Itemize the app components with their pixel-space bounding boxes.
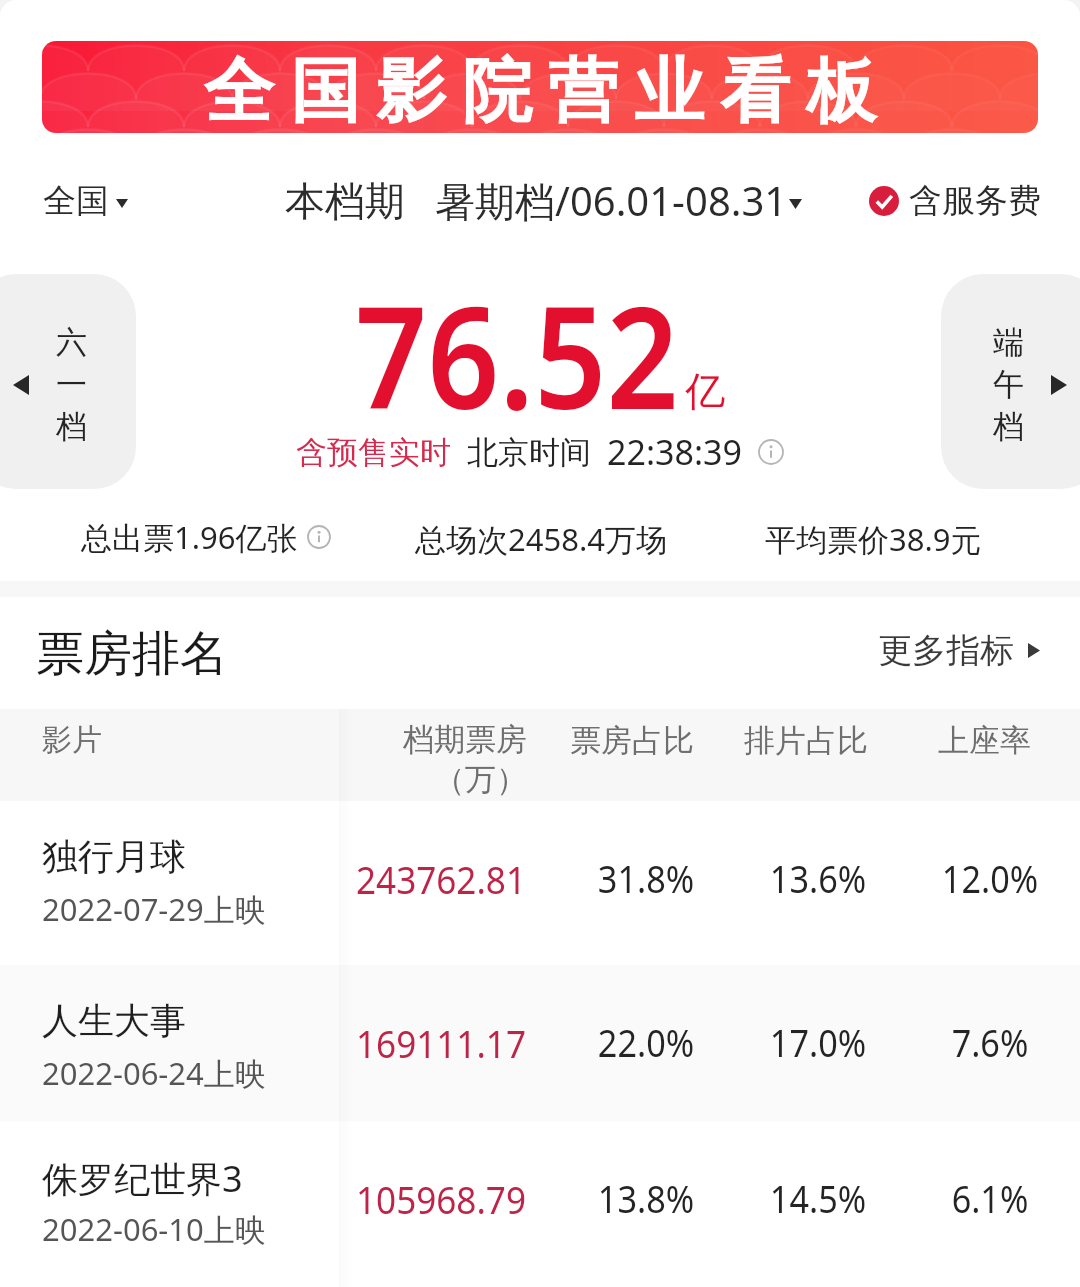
staticText: 北京时间 xyxy=(467,433,591,472)
staticText: 暑期档/06.01-08.31 xyxy=(435,173,788,228)
staticText: 端 xyxy=(993,323,1024,362)
button[interactable]: 下一个档期 xyxy=(1051,375,1067,395)
staticText: 总出票1.96亿张 xyxy=(81,516,298,558)
staticText: 2022-07-29上映 xyxy=(42,888,266,930)
staticText: 14.5% xyxy=(683,1172,953,1224)
button[interactable]: 全国影院营业看板 xyxy=(42,41,1038,133)
button[interactable]: 出票说明 xyxy=(307,525,331,549)
staticText: 6.1% xyxy=(855,1172,1080,1224)
staticText: 22:38:39 xyxy=(607,429,742,475)
button[interactable]: 端 xyxy=(941,274,1080,489)
button[interactable]: 人生大事 xyxy=(0,965,1080,1121)
staticText: 22.0% xyxy=(511,1016,781,1068)
staticText: 含预售实时 xyxy=(296,433,451,472)
staticText: 7.6% xyxy=(855,1016,1080,1068)
button[interactable]: 更多指标 xyxy=(878,629,1040,672)
staticText: 本档期 xyxy=(285,176,405,226)
staticText: 排片占比 xyxy=(744,721,868,760)
button[interactable]: 数据说明 xyxy=(758,439,784,465)
staticText: 影片 xyxy=(42,721,102,759)
staticText: 总场次2458.4万场 xyxy=(415,518,667,560)
staticText: 侏罗纪世界3 xyxy=(42,1154,243,1203)
button[interactable]: 全国 xyxy=(43,180,128,222)
staticText: 全国 xyxy=(43,180,109,222)
staticText: 2022-06-24上映 xyxy=(42,1052,266,1094)
staticText: 169111.17 xyxy=(306,1016,576,1069)
staticText: 六 xyxy=(56,323,87,362)
staticText: 更多指标 xyxy=(878,629,1014,672)
button[interactable]: 侏罗纪世界3 xyxy=(0,1121,1080,1287)
staticText: 2022-06-10上映 xyxy=(42,1208,266,1250)
button[interactable]: 本档期 xyxy=(285,173,802,228)
staticText: 独行月球 xyxy=(42,834,186,879)
staticText: 档期票房 xyxy=(403,720,527,759)
staticText: 12.0% xyxy=(855,852,1080,904)
staticText: 31.8% xyxy=(511,852,781,904)
staticText: 上座率 xyxy=(938,721,1031,760)
staticText: 午 xyxy=(993,365,1024,404)
staticText: 13.8% xyxy=(511,1172,781,1224)
button[interactable]: 独行月球 xyxy=(0,801,1080,965)
staticText: 含服务费 xyxy=(909,180,1041,222)
staticText: 一 xyxy=(56,365,87,404)
staticText: （万） xyxy=(434,760,527,799)
staticText: 票房占比 xyxy=(570,721,694,760)
button[interactable]: 上一个档期 xyxy=(13,375,29,395)
staticText: 票房排名 xyxy=(36,624,228,684)
staticText: 105968.79 xyxy=(306,1172,576,1225)
staticText: 亿 xyxy=(685,366,725,416)
button[interactable]: 含服务费 xyxy=(869,180,1041,222)
staticText: 档 xyxy=(56,407,87,446)
staticText: 17.0% xyxy=(683,1016,953,1068)
staticText: 档 xyxy=(993,407,1024,446)
staticText: 13.6% xyxy=(683,852,953,904)
staticText: 76.52 xyxy=(355,258,679,450)
staticText: 人生大事 xyxy=(42,998,186,1043)
button[interactable]: 六 xyxy=(0,274,136,489)
staticText: 平均票价38.9元 xyxy=(765,518,982,560)
staticText: 243762.81 xyxy=(306,852,576,905)
staticText: 全国影院营业看板 xyxy=(196,48,884,133)
